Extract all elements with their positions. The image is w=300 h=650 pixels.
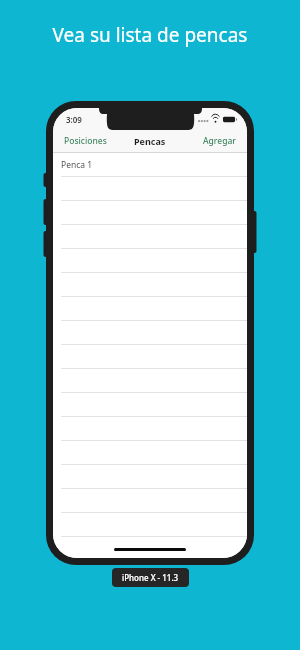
staticText: Vea su lista de pencas bbox=[0, 22, 300, 48]
staticText: 3:09 bbox=[66, 114, 82, 125]
staticText: Penca 1 bbox=[61, 159, 93, 171]
staticText: Agregar bbox=[203, 135, 236, 147]
staticText: iPhone X - 11.3 bbox=[122, 572, 179, 583]
button[interactable]: iPhone X - 11.3 bbox=[112, 568, 189, 587]
staticText: Pencas bbox=[134, 135, 166, 147]
button[interactable]: Posiciones bbox=[53, 132, 113, 150]
button[interactable]: Penca 1 bbox=[53, 153, 247, 177]
staticText: Posiciones bbox=[64, 135, 107, 147]
button[interactable]: Agregar bbox=[197, 132, 247, 150]
